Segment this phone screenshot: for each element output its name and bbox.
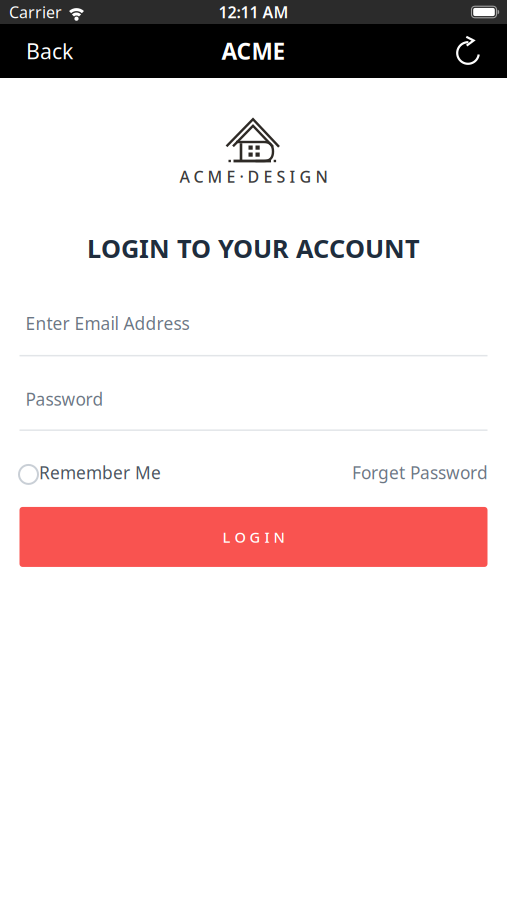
button[interactable]: Remember Me: [19, 461, 161, 484]
staticText: Carrier: [9, 1, 62, 23]
staticText: Back: [26, 37, 73, 65]
staticText: LOGIN TO YOUR ACCOUNT: [87, 231, 420, 265]
button[interactable]: Forget Password: [352, 461, 488, 484]
button[interactable]: Refresh: [456, 24, 507, 78]
staticText: ACME: [221, 36, 285, 66]
staticText: 12:11 AM: [218, 1, 288, 23]
staticText: Password: [25, 387, 103, 410]
staticText: Forget Password: [352, 461, 488, 484]
staticText: Remember Me: [39, 461, 161, 484]
staticText: L O G I N: [222, 527, 284, 547]
staticText: A C M E · D E S I G N: [179, 166, 327, 187]
button[interactable]: Back: [0, 23, 73, 79]
staticText: Enter Email Address: [25, 312, 189, 335]
button[interactable]: L O G I N: [19, 507, 487, 567]
